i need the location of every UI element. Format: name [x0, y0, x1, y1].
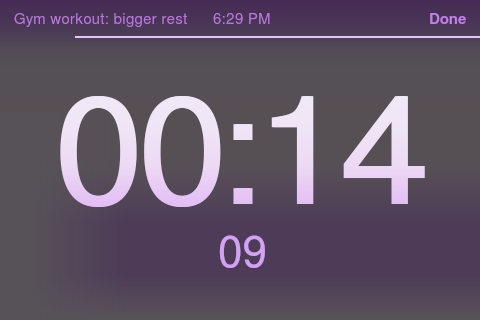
staticText: Gym workout: bigger rest — [14, 12, 188, 27]
staticText: 00:14 — [56, 83, 425, 234]
button[interactable]: Done — [416, 6, 480, 33]
staticText: Done — [429, 12, 467, 27]
staticText: 6:29 PM — [213, 12, 272, 27]
staticText: 09 — [218, 232, 267, 276]
staticText: 00:14 — [53, 83, 423, 234]
